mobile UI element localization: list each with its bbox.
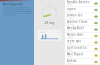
button[interactable]: Mail Digest <box>65 52 100 58</box>
staticText: 3 weeks <box>67 56 73 58</box>
staticText: Jordan Lee <box>67 13 83 17</box>
button[interactable]: Gulf Coast Co. <box>65 45 100 52</box>
button[interactable]: Digest <box>65 6 100 13</box>
staticText: Last week <box>67 43 74 45</box>
staticText: Mail Digest <box>67 52 83 56</box>
staticText: Yesterday <box>67 17 75 19</box>
staticText: Sabrina Chaze <box>67 20 88 23</box>
staticText: Weekly Brief <box>67 26 84 30</box>
staticText: Franklin Barnes <box>67 0 89 4</box>
staticText: Daily intake <box>39 31 46 33</box>
staticText: 2 weeks <box>67 49 73 51</box>
button[interactable]: Jordan Lee <box>65 13 100 19</box>
staticText: 28 mg <box>44 21 54 25</box>
staticText: Nolan Ortiz <box>67 33 83 36</box>
staticText: Drop into the arena and fight to be the … <box>2 7 31 16</box>
staticText: Digest <box>67 7 76 10</box>
button[interactable]: Franklin Barnes <box>65 0 100 6</box>
staticText: Last week <box>67 36 74 38</box>
staticText: Gulf Coast Co. <box>67 46 88 49</box>
staticText: 40% <box>56 31 59 33</box>
staticText: Tuesday <box>67 23 74 25</box>
button[interactable]: Team Sync <box>65 39 100 45</box>
button[interactable]: Archive <box>65 58 100 65</box>
staticText: Monday <box>67 30 73 32</box>
staticText: Team Sync <box>67 39 81 43</box>
staticText: Apex Legends <box>2 2 22 6</box>
staticText: 2 min ago <box>67 4 73 6</box>
button[interactable]: Weekly Brief <box>65 26 100 32</box>
staticText: 08:30 <box>67 10 71 12</box>
button[interactable]: Sabrina Chaze <box>65 19 100 26</box>
staticText: Archive <box>67 59 77 62</box>
staticText: 4 weeks <box>67 62 73 64</box>
button[interactable]: Nolan Ortiz <box>65 32 100 39</box>
